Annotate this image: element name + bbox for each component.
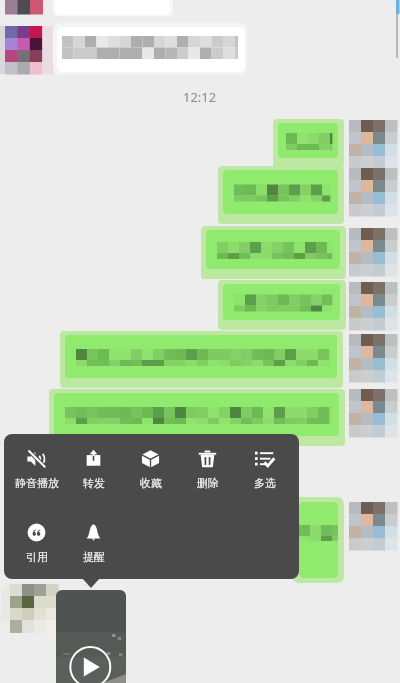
staticText: 静音播放: [15, 476, 59, 490]
staticText: 12:12: [183, 88, 217, 106]
staticText: 转发: [83, 476, 105, 490]
button[interactable]: 转发: [65, 434, 122, 508]
staticText: 提醒: [83, 550, 105, 564]
button[interactable]: Play video: [56, 590, 126, 683]
button[interactable]: 引用: [8, 508, 65, 579]
button[interactable]: 静音播放: [8, 434, 65, 508]
button[interactable]: 多选: [236, 434, 293, 508]
button[interactable]: 收藏: [122, 434, 179, 508]
staticText: 收藏: [140, 476, 162, 490]
staticText: 多选: [254, 476, 276, 490]
button[interactable]: 删除: [179, 434, 236, 508]
staticText: 引用: [26, 550, 48, 564]
staticText: 删除: [197, 476, 219, 490]
button[interactable]: 提醒: [65, 508, 122, 579]
